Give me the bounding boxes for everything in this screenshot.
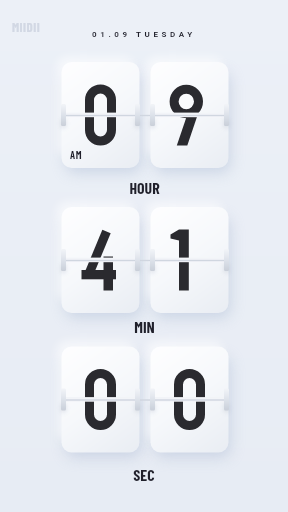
- staticText: MIIDII: [12, 19, 41, 35]
- button[interactable]: 01.09 TUESDAY: [0, 30, 288, 39]
- staticText: HOUR: [129, 178, 160, 197]
- staticText: SEC: [133, 465, 155, 484]
- staticText: MIN: [134, 317, 155, 336]
- staticText: 01.09 TUESDAY: [92, 30, 196, 39]
- staticText: AM: [70, 148, 83, 161]
